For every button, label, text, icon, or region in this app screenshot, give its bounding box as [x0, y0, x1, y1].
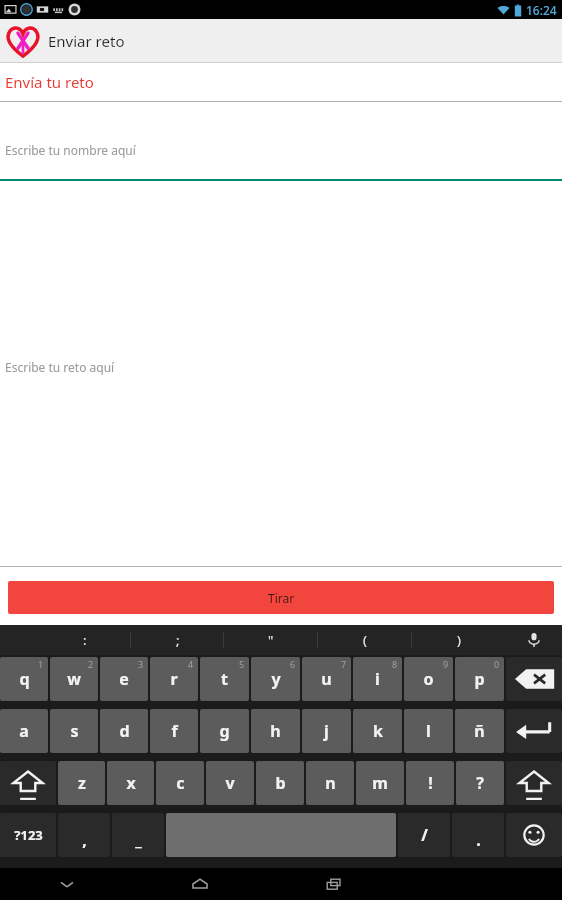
- button[interactable]: x: [107, 761, 154, 805]
- staticText: Envía tu reto: [5, 72, 94, 92]
- staticText: :: [83, 631, 87, 649]
- button[interactable]: !: [406, 761, 454, 805]
- staticText: 8: [392, 658, 398, 670]
- button[interactable]: v: [206, 761, 254, 805]
- staticText: Enviar reto: [48, 31, 125, 51]
- button[interactable]: .: [452, 813, 504, 857]
- staticText: 16:24: [526, 2, 557, 18]
- staticText: s: [70, 720, 79, 742]
- button[interactable]: y: [251, 657, 300, 701]
- staticText: w: [67, 668, 81, 690]
- staticText: y: [271, 668, 281, 690]
- staticText: f: [171, 720, 178, 742]
- button[interactable]: d: [100, 709, 148, 753]
- button[interactable]: s: [50, 709, 98, 753]
- button[interactable]: ,: [58, 813, 110, 857]
- button[interactable]: ;: [131, 625, 224, 655]
- button[interactable]: n: [306, 761, 354, 805]
- button[interactable]: Shift: [0, 761, 56, 805]
- staticText: ñ: [474, 720, 485, 742]
- button[interactable]: w: [50, 657, 98, 701]
- staticText: 7: [341, 658, 347, 670]
- button[interactable]: u: [302, 657, 351, 701]
- button[interactable]: a: [0, 709, 48, 753]
- button[interactable]: j: [302, 709, 351, 753]
- button[interactable]: (: [318, 625, 412, 655]
- staticText: Escribe tu nombre aquí: [5, 142, 136, 158]
- staticText: 2: [88, 658, 94, 670]
- button[interactable]: Backspace: [506, 657, 562, 701]
- button[interactable]: k: [353, 709, 402, 753]
- staticText: 9: [443, 658, 449, 670]
- staticText: e: [119, 668, 129, 690]
- staticText: t: [221, 668, 228, 690]
- staticText: Tirar: [268, 590, 295, 606]
- staticText: ;: [176, 631, 180, 649]
- staticText: ?: [476, 772, 484, 794]
- staticText: ): [457, 631, 461, 649]
- button[interactable]: ?123: [0, 813, 56, 857]
- staticText: r: [170, 668, 178, 690]
- button[interactable]: Escribe tu nombre aquí: [0, 102, 562, 181]
- staticText: g: [219, 720, 230, 742]
- button[interactable]: e: [100, 657, 148, 701]
- staticText: v: [225, 772, 235, 794]
- staticText: ?123: [14, 826, 43, 844]
- staticText: u: [321, 668, 332, 690]
- staticText: _: [135, 829, 142, 851]
- staticText: j: [324, 720, 329, 742]
- staticText: 1: [38, 658, 44, 670]
- button[interactable]: t: [200, 657, 249, 701]
- button[interactable]: Enter: [506, 709, 562, 753]
- button[interactable]: q: [0, 657, 48, 701]
- staticText: p: [474, 668, 485, 690]
- staticText: !: [428, 772, 433, 794]
- staticText: l: [426, 720, 431, 742]
- button[interactable]: z: [58, 761, 105, 805]
- staticText: c: [176, 772, 185, 794]
- staticText: 0: [494, 658, 500, 670]
- staticText: /: [421, 824, 428, 846]
- button[interactable]: Enviar reto: [0, 19, 562, 62]
- staticText: q: [19, 668, 30, 690]
- button[interactable]: l: [404, 709, 453, 753]
- button[interactable]: _: [112, 813, 164, 857]
- button[interactable]: o: [404, 657, 453, 701]
- staticText: 6: [290, 658, 296, 670]
- button[interactable]: ñ: [455, 709, 504, 753]
- button[interactable]: m: [356, 761, 404, 805]
- button[interactable]: i: [353, 657, 402, 701]
- button[interactable]: p: [455, 657, 504, 701]
- button[interactable]: r: [150, 657, 198, 701]
- button[interactable]: ?: [456, 761, 504, 805]
- button[interactable]: f: [150, 709, 198, 753]
- staticText: m: [372, 772, 388, 794]
- staticText: o: [423, 668, 434, 690]
- staticText: i: [375, 668, 380, 690]
- staticText: Escribe tu reto aquí: [5, 359, 115, 375]
- button[interactable]: b: [256, 761, 304, 805]
- button[interactable]: ": [224, 625, 318, 655]
- button[interactable]: Recent apps: [267, 868, 401, 900]
- staticText: ,: [82, 829, 87, 851]
- button[interactable]: /: [398, 813, 450, 857]
- button[interactable]: Escribe tu reto aquí: [0, 181, 562, 567]
- button[interactable]: Home: [133, 868, 267, 900]
- button[interactable]: Shift: [506, 761, 562, 805]
- button[interactable]: g: [200, 709, 249, 753]
- button[interactable]: Voice input: [506, 625, 562, 655]
- button[interactable]: Hide keyboard: [0, 868, 133, 900]
- button[interactable]: c: [156, 761, 204, 805]
- button[interactable]: Tirar: [8, 581, 554, 614]
- staticText: 3: [138, 658, 144, 670]
- button[interactable]: :: [38, 625, 131, 655]
- staticText: 4: [188, 658, 194, 670]
- button[interactable]: h: [251, 709, 300, 753]
- button[interactable]: Emoji: [506, 813, 562, 857]
- staticText: d: [119, 720, 130, 742]
- staticText: (: [363, 631, 367, 649]
- staticText: z: [78, 772, 86, 794]
- staticText: x: [126, 772, 136, 794]
- button[interactable]: ): [412, 625, 506, 655]
